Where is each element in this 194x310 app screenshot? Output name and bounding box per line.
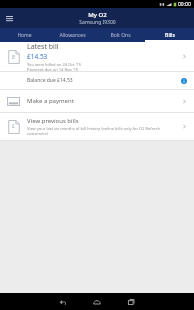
staticText: You were billed on 24 Oct '15 [27,62,82,67]
staticText: Balance due £14.53 [27,77,180,84]
staticText: £14.53 [27,52,48,61]
button[interactable]: Recent apps [122,293,140,310]
button[interactable]: Bills [145,28,194,42]
staticText: My O2 [88,11,107,19]
button[interactable]: Home [88,293,106,310]
button[interactable]: Make a payment [0,90,194,112]
staticText: Bills [165,32,175,39]
button[interactable]: Allowances [48,28,96,42]
button[interactable]: Home [0,28,48,42]
staticText: Allowances [59,32,86,39]
button[interactable]: Balance due £14.53 [0,72,194,89]
staticText: Samsung I9300 [79,19,116,26]
button[interactable]: Bolt Ons [96,28,145,42]
staticText: View previous bills [27,117,79,125]
button[interactable]: Back [54,293,72,310]
staticText: £ [12,123,15,130]
button[interactable]: E [0,42,194,71]
staticText: Make a payment [27,97,181,105]
staticText: Latest bill [27,42,59,52]
button[interactable]: £ [0,113,194,140]
button[interactable]: Open navigation drawer [3,12,16,25]
staticText: 00:00 [178,1,191,8]
staticText: Bolt Ons [110,32,131,39]
staticText: E [12,53,16,61]
staticText: View your last six months of bill histor… [27,126,181,136]
button[interactable]: Balance information [180,77,188,85]
staticText: Payment due on 14 Nov '15 [27,67,79,71]
staticText: Home [17,32,32,39]
